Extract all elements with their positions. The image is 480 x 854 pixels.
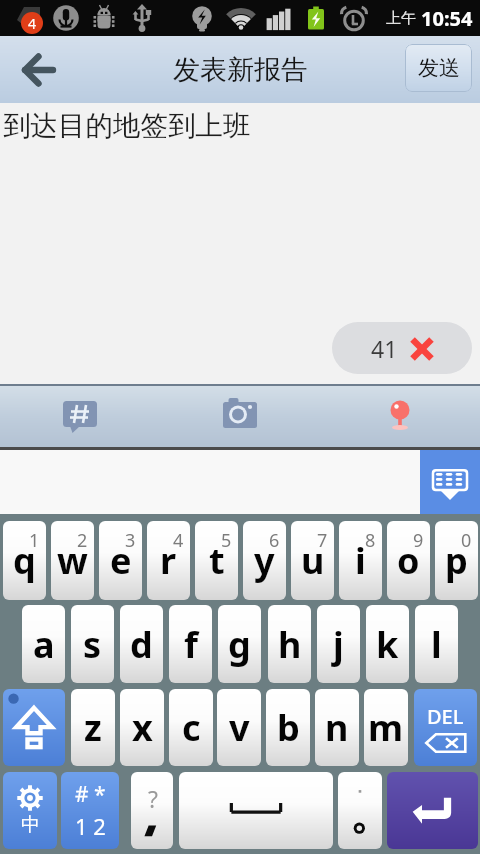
staticText: y bbox=[254, 536, 275, 585]
staticText: d bbox=[130, 620, 153, 669]
staticText: 41 bbox=[371, 333, 398, 364]
staticText: 0 bbox=[461, 528, 472, 553]
staticText: b bbox=[277, 703, 300, 752]
other: Delete bbox=[414, 689, 477, 766]
button[interactable]: g bbox=[218, 605, 261, 683]
button[interactable]: e bbox=[99, 521, 142, 600]
staticText: 4 bbox=[173, 528, 184, 553]
button[interactable]: d bbox=[120, 605, 163, 683]
other: Enter bbox=[387, 772, 478, 849]
button[interactable]: s bbox=[71, 605, 114, 683]
button[interactable]: 发送 bbox=[405, 44, 472, 92]
staticText: # * bbox=[75, 780, 106, 809]
staticText: s bbox=[83, 620, 102, 669]
button[interactable]: Period bbox=[338, 772, 382, 849]
button[interactable]: l bbox=[415, 605, 458, 683]
staticText: w bbox=[57, 536, 88, 585]
other: Symbols bbox=[61, 772, 119, 849]
staticText: 发送 bbox=[418, 55, 460, 81]
button[interactable]: r bbox=[147, 521, 190, 600]
staticText: p bbox=[445, 536, 468, 585]
button[interactable]: q bbox=[3, 521, 46, 600]
button[interactable]: a bbox=[22, 605, 65, 683]
button[interactable]: h bbox=[268, 605, 311, 683]
staticText: 7 bbox=[317, 528, 328, 553]
button[interactable]: t bbox=[195, 521, 238, 600]
button[interactable]: Symbols bbox=[61, 772, 119, 849]
button[interactable]: m bbox=[364, 689, 408, 766]
staticText: ? bbox=[148, 783, 158, 814]
staticText: r bbox=[160, 536, 177, 585]
button[interactable]: k bbox=[366, 605, 409, 683]
staticText: k bbox=[376, 620, 399, 669]
button[interactable]: v bbox=[217, 689, 261, 766]
staticText: 中 bbox=[21, 813, 40, 837]
button[interactable]: Hide keyboard bbox=[420, 450, 480, 514]
button[interactable]: n bbox=[315, 689, 359, 766]
other: Period bbox=[338, 772, 382, 849]
button[interactable]: c bbox=[169, 689, 213, 766]
button[interactable]: Space bbox=[179, 772, 333, 849]
button[interactable]: ? bbox=[131, 772, 173, 849]
button[interactable]: f bbox=[169, 605, 212, 683]
staticText: 上午 bbox=[386, 9, 416, 28]
staticText: c bbox=[182, 703, 201, 752]
button[interactable]: Camera bbox=[160, 386, 320, 447]
staticText: DEL bbox=[427, 703, 464, 730]
button[interactable]: Topic bbox=[0, 386, 160, 447]
button[interactable]: j bbox=[317, 605, 360, 683]
button[interactable]: o bbox=[387, 521, 430, 600]
button[interactable]: b bbox=[266, 689, 310, 766]
staticText: f bbox=[184, 620, 198, 669]
button[interactable]: u bbox=[291, 521, 334, 600]
other: Space bbox=[179, 772, 333, 849]
staticText: q bbox=[13, 536, 36, 585]
staticText: v bbox=[229, 703, 250, 752]
staticText: t bbox=[209, 536, 225, 585]
staticText: u bbox=[301, 536, 325, 585]
staticText: 5 bbox=[221, 528, 232, 553]
staticText: a bbox=[33, 620, 55, 669]
button[interactable]: y bbox=[243, 521, 286, 600]
staticText: 8 bbox=[365, 528, 376, 553]
button[interactable]: i bbox=[339, 521, 382, 600]
staticText: 1 2 bbox=[75, 811, 106, 841]
button[interactable]: Back bbox=[11, 36, 67, 103]
button[interactable]: Delete bbox=[414, 689, 477, 766]
staticText: 9 bbox=[413, 528, 424, 553]
button[interactable]: Settings bbox=[3, 772, 57, 849]
staticText: m bbox=[368, 703, 404, 752]
button[interactable]: Enter bbox=[387, 772, 478, 849]
staticText: z bbox=[84, 703, 102, 752]
button[interactable]: 41 bbox=[332, 322, 472, 374]
staticText: 2 bbox=[77, 528, 88, 553]
staticText: x bbox=[132, 703, 153, 752]
staticText: n bbox=[325, 703, 349, 752]
staticText: 1 bbox=[29, 528, 40, 553]
staticText: 到达目的地签到上班 bbox=[3, 109, 251, 144]
button[interactable]: z bbox=[71, 689, 115, 766]
staticText: j bbox=[333, 620, 344, 669]
staticText: 10:54 bbox=[421, 5, 473, 32]
button[interactable]: Location bbox=[320, 386, 480, 447]
staticText: h bbox=[278, 620, 302, 669]
button[interactable]: w bbox=[51, 521, 94, 600]
staticText: 6 bbox=[269, 528, 280, 553]
staticText: 发表新报告 bbox=[173, 53, 308, 87]
other: Shift bbox=[3, 689, 65, 766]
staticText: g bbox=[228, 620, 251, 669]
staticText: o bbox=[397, 536, 420, 585]
staticText: 3 bbox=[125, 528, 136, 553]
button[interactable]: p bbox=[435, 521, 478, 600]
button[interactable]: Shift bbox=[3, 689, 65, 766]
other: Settings bbox=[3, 772, 57, 849]
staticText: l bbox=[431, 620, 442, 669]
staticText: 4 bbox=[28, 14, 37, 33]
staticText: e bbox=[110, 536, 132, 585]
staticText: i bbox=[355, 536, 366, 585]
button[interactable]: x bbox=[120, 689, 164, 766]
